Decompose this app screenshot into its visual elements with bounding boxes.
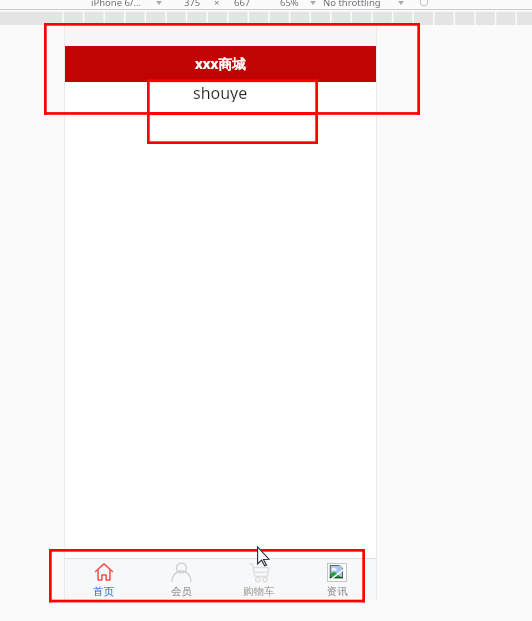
- staticText: xxx商城: [195, 55, 246, 73]
- staticText: 资讯: [327, 585, 348, 598]
- staticText: 375: [184, 0, 201, 9]
- button[interactable]: Cart: [220, 559, 298, 600]
- staticText: 会员: [171, 585, 192, 598]
- staticText: iPhone 6/...: [91, 0, 142, 9]
- staticText: No throttling: [323, 0, 381, 9]
- staticText: shouye: [193, 82, 248, 102]
- staticText: 购物车: [243, 585, 275, 598]
- button[interactable]: News: [298, 559, 376, 600]
- staticText: ×: [214, 0, 220, 9]
- staticText: 65%: [280, 0, 299, 9]
- button[interactable]: Member: [142, 559, 220, 600]
- button[interactable]: Home: [65, 559, 142, 600]
- staticText: 667: [234, 0, 251, 9]
- button[interactable]: shouye: [65, 82, 376, 102]
- staticText: 首页: [93, 585, 114, 598]
